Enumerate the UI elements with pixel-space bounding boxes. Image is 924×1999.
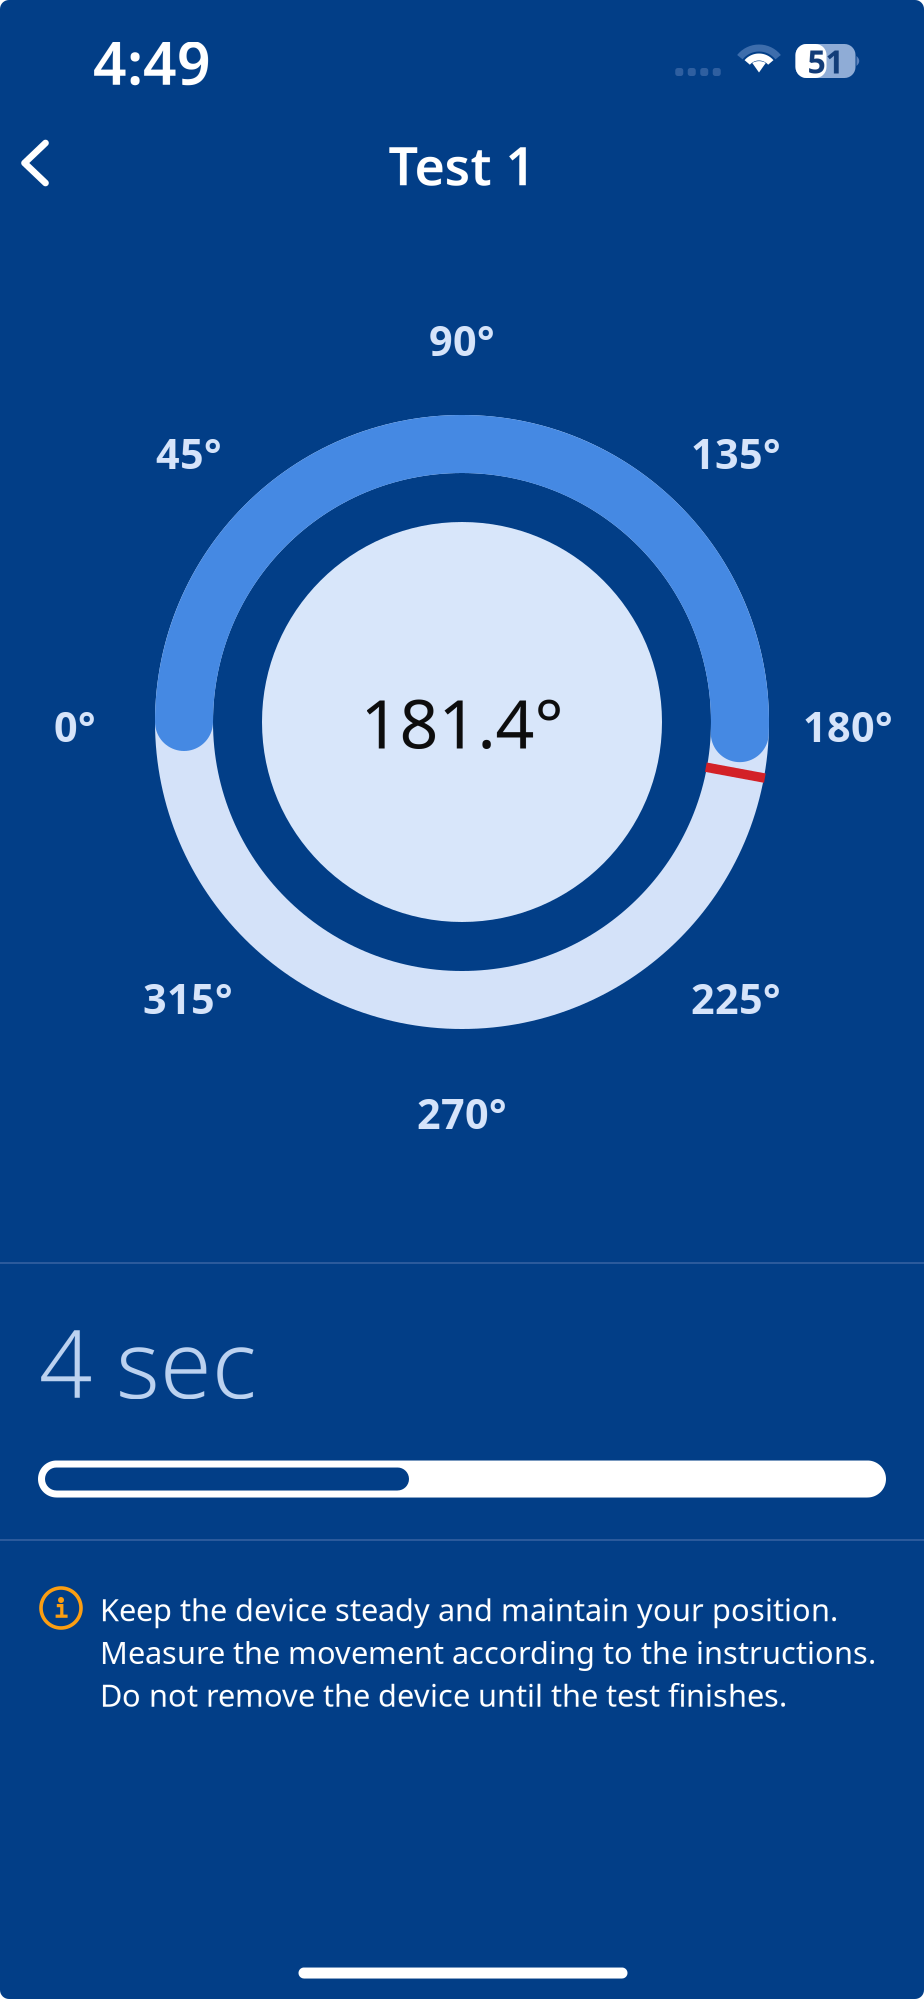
staticText: 45°	[156, 426, 222, 480]
staticText: 135°	[691, 426, 781, 480]
staticText: Keep the device steady and maintain your…	[100, 1589, 876, 1715]
staticText: 4:49	[93, 23, 211, 101]
button[interactable]: Back	[0, 119, 79, 207]
staticText: 51	[807, 40, 843, 82]
staticText: 90°	[429, 313, 495, 367]
staticText: 270°	[417, 1086, 507, 1140]
staticText: 4 sec	[39, 1300, 256, 1424]
staticText: Test 1	[388, 130, 535, 200]
staticText: 225°	[691, 971, 781, 1025]
staticText: 0°	[54, 699, 96, 753]
staticText: 315°	[143, 971, 233, 1025]
staticText: 180°	[803, 699, 893, 753]
staticText: 181.4°	[360, 677, 563, 767]
